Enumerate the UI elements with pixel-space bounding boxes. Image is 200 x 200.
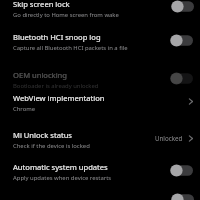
staticText: Unlocked xyxy=(155,134,183,142)
staticText: Check if the device is locked xyxy=(13,142,90,150)
button[interactable]: WebView implementation xyxy=(0,93,200,121)
button[interactable]: Skip screen lock xyxy=(0,0,200,30)
button[interactable]: Mi Unlock status xyxy=(0,121,200,159)
staticText: Bootloader is already unlocked xyxy=(13,82,99,90)
staticText: Chrome xyxy=(13,105,36,113)
staticText: OEM unlocking xyxy=(13,70,67,80)
staticText: WebView implementation xyxy=(13,93,105,103)
staticText: Automatic system updates xyxy=(13,162,108,172)
button[interactable]: OEM unlocking xyxy=(0,51,200,93)
button[interactable]: Next setting xyxy=(0,185,200,200)
staticText: Bluetooth HCI snoop log xyxy=(13,32,101,42)
staticText: Skip screen lock xyxy=(13,0,70,9)
button[interactable]: Automatic system updates xyxy=(0,159,200,185)
staticText: Apply updates when device restarts xyxy=(13,174,112,182)
staticText: Capture all Bluetooth HCI packets in a f… xyxy=(13,44,128,51)
staticText: Go directly to Home screen from wake xyxy=(13,11,119,19)
staticText: Mi Unlock status xyxy=(13,130,73,140)
button[interactable]: Bluetooth HCI snoop log xyxy=(0,30,200,51)
